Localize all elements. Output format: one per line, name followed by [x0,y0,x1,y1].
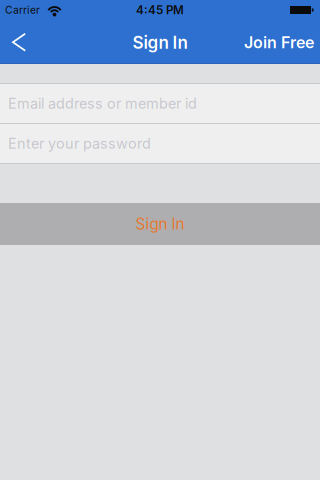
staticText: Email address or member id [8,95,197,112]
staticText: Sign In [135,215,184,233]
staticText: Join Free [244,33,314,52]
button[interactable]: Sign In [0,203,320,245]
staticText: Carrier [5,4,40,16]
button[interactable]: Join Free [244,20,320,63]
button[interactable]: Email address or member id [0,84,320,123]
button[interactable]: Enter your password [0,124,320,163]
button[interactable]: Back [0,19,33,63]
staticText: Sign In [132,32,187,53]
staticText: Enter your password [8,135,151,152]
staticText: 4:45 PM [136,3,184,17]
